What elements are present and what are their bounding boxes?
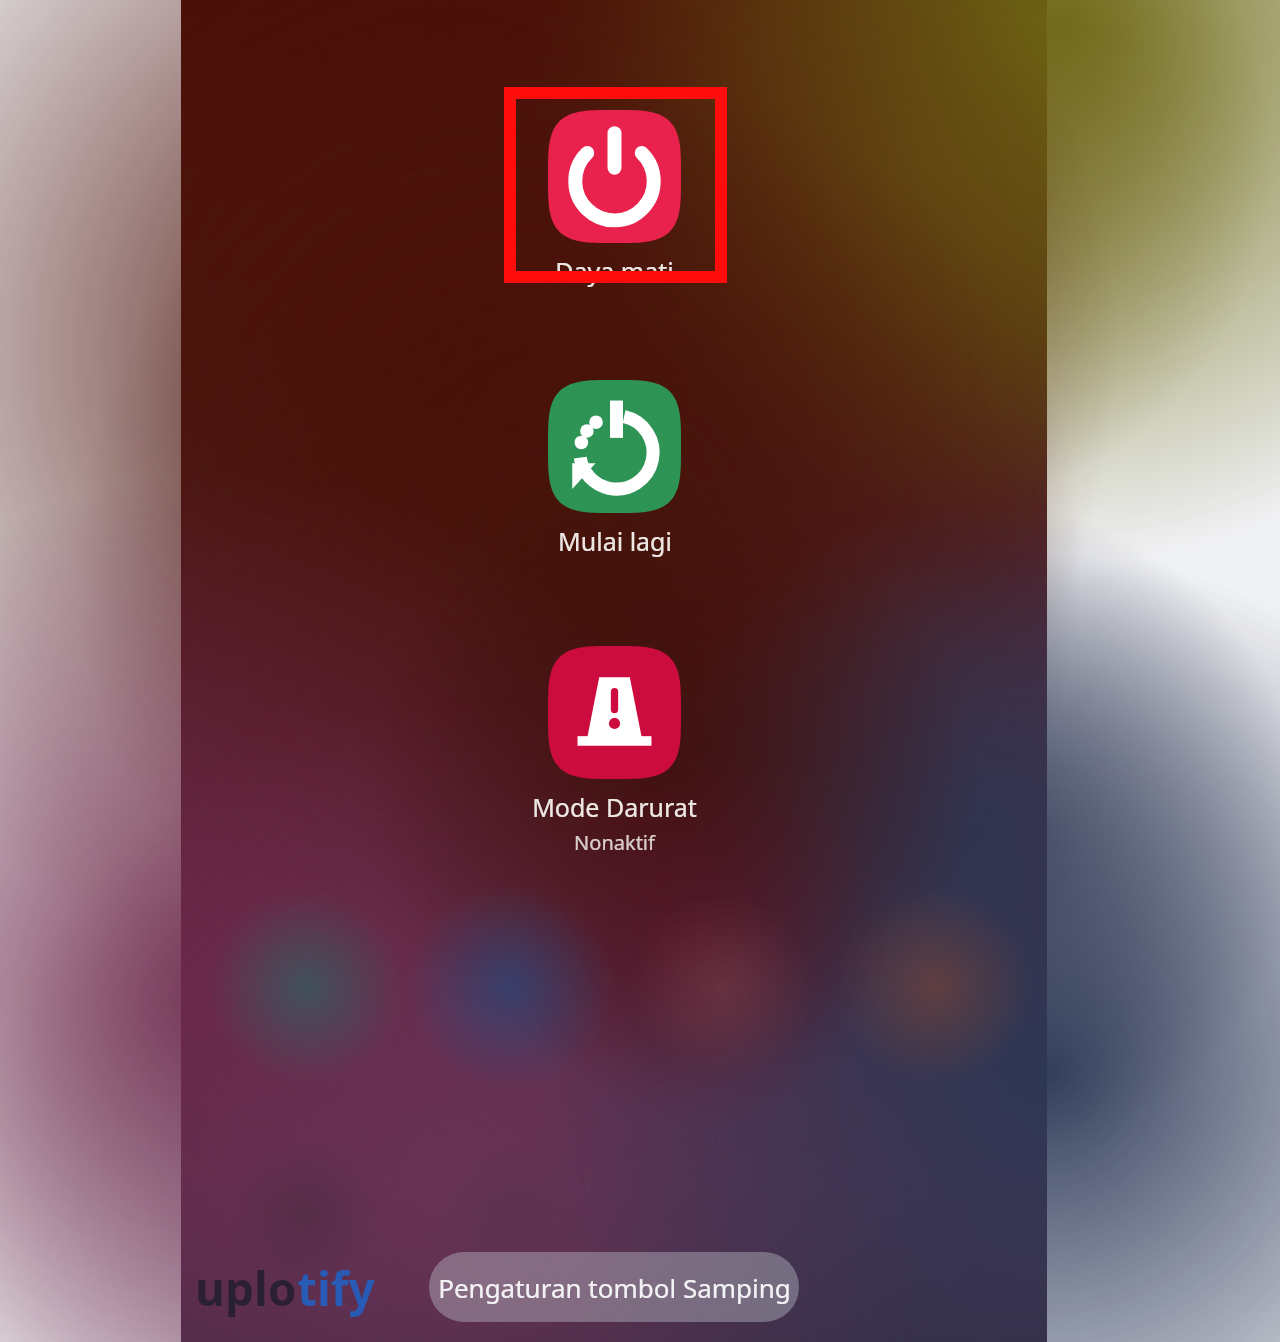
staticText: Nonaktif (574, 829, 655, 856)
staticText: Mulai lagi (558, 524, 672, 558)
button[interactable]: Emergency mode (532, 646, 697, 856)
staticText: uplo (195, 1257, 297, 1320)
staticText: Pengaturan tombol Samping (438, 1270, 791, 1305)
button[interactable]: Pengaturan tombol Samping (429, 1252, 799, 1322)
other: Restart (548, 380, 681, 513)
button[interactable]: Power off (548, 110, 681, 288)
other: Emergency mode (548, 646, 681, 779)
staticText: Mode Darurat (532, 790, 697, 824)
button[interactable]: Restart (548, 380, 681, 558)
other: Power off (548, 110, 681, 243)
staticText: tify (297, 1257, 375, 1320)
staticText: Daya mati (555, 254, 674, 288)
